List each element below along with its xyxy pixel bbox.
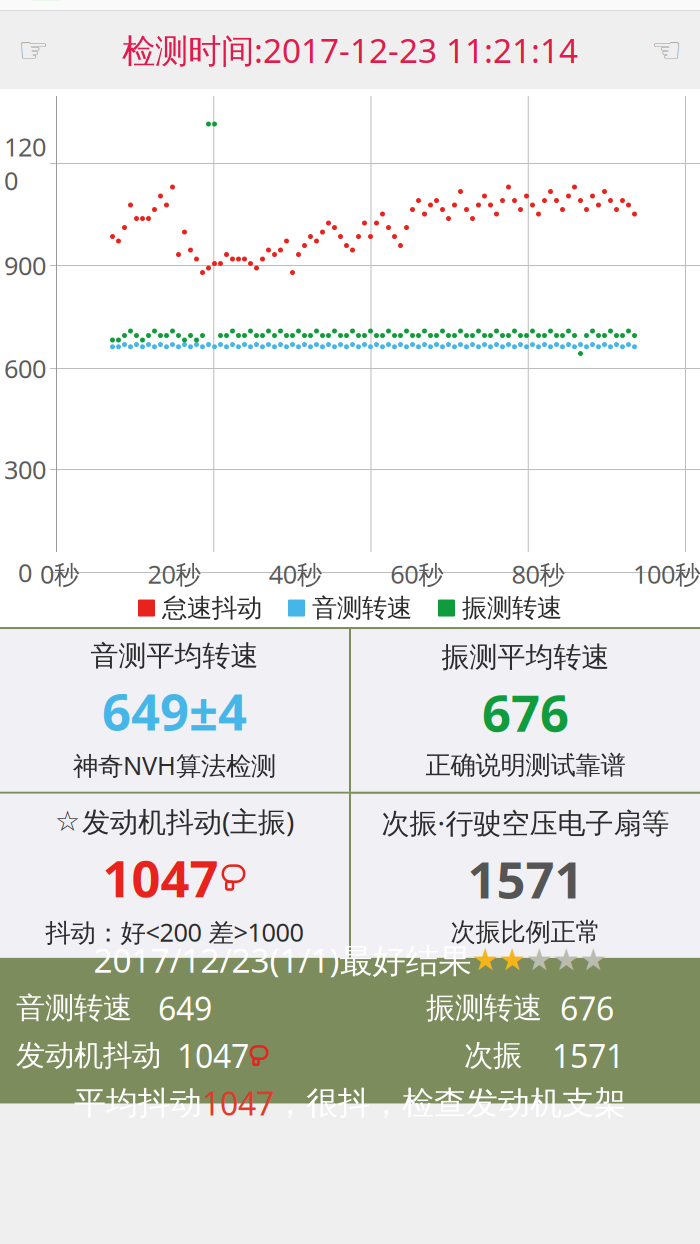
staticText: 0 (18, 556, 32, 589)
staticText: ，很抖，检查发动机支架 (274, 1083, 626, 1123)
staticText: 抖动：好<200 差>1000 (45, 915, 303, 949)
staticText: 次振·行驶空压电子扇等 (381, 804, 669, 841)
staticText: 2017/12/23(1/1)最好结果 (93, 938, 471, 982)
button[interactable]: 振测平均转速 (351, 631, 700, 790)
staticText: 音测平均转速 (90, 639, 258, 673)
button[interactable]: 次振·行驶空压电子扇等 (351, 795, 700, 957)
staticText: 40秒 (269, 557, 322, 591)
staticText: ★★ (471, 942, 525, 977)
staticText: 100秒 (633, 557, 700, 591)
staticText: 300 (4, 453, 46, 486)
staticText: 振测转速 (426, 990, 542, 1026)
staticText: ☆ (55, 805, 80, 837)
staticText: 20秒 (147, 557, 200, 591)
staticText: 600 (4, 352, 46, 385)
staticText: 676 (560, 987, 614, 1029)
staticText: 0秒 (40, 557, 79, 591)
staticText: 振测转速 (462, 592, 562, 624)
staticText: ☜ (651, 30, 682, 70)
button[interactable]: ☆ (0, 794, 349, 958)
staticText: 音测转速 (16, 990, 132, 1026)
staticText: 发动机抖动 (16, 1038, 161, 1074)
button[interactable]: 音测平均转速 (0, 630, 349, 791)
staticText: 80秒 (512, 557, 565, 591)
staticText: 1047 (202, 1082, 274, 1124)
staticText: 怠速抖动 (162, 592, 262, 624)
staticText: 正确说明测试靠谱 (425, 750, 625, 781)
staticText: 神奇NVH算法检测 (73, 748, 276, 782)
staticText: 676 (482, 678, 569, 746)
staticText: 次振比例正常 (450, 916, 600, 948)
staticText: 平均抖动 (74, 1083, 202, 1123)
staticText: 649 (158, 987, 212, 1029)
staticText: 1200 (4, 130, 46, 197)
staticText: 1047 (177, 1034, 249, 1077)
staticText: 检测时间:2017-12-23 11:21:14 (122, 28, 578, 72)
staticText: 1047 (102, 844, 218, 911)
staticText: 音测转速 (312, 592, 412, 624)
staticText: 900 (4, 249, 46, 282)
staticText: 振测平均转速 (441, 640, 609, 674)
staticText: ☞ (18, 30, 49, 70)
staticText: 发动机抖动(主振) (82, 803, 294, 840)
staticText: ★★★ (525, 942, 606, 977)
staticText: 649±4 (102, 677, 247, 744)
staticText: 60秒 (390, 557, 443, 591)
staticText: 1571 (467, 845, 583, 912)
staticText: 1571 (552, 1034, 624, 1077)
staticText: 次振 (464, 1038, 522, 1074)
